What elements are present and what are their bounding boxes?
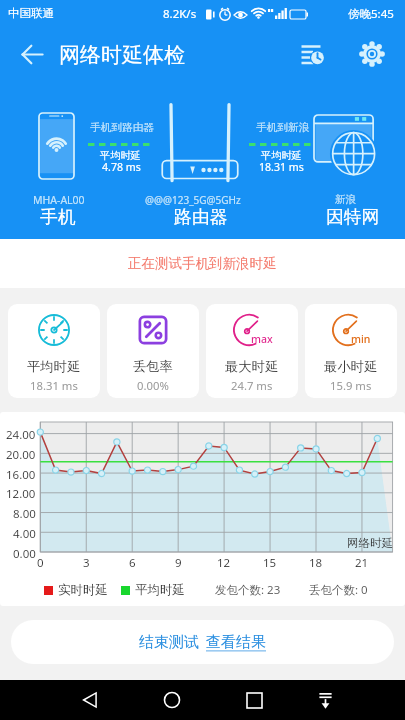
staticText: 12 xyxy=(217,555,231,571)
staticText: 网络时延 xyxy=(347,536,393,550)
staticText: 18.31 ms xyxy=(259,160,304,174)
button[interactable]: Settings xyxy=(349,29,395,79)
staticText: 15 xyxy=(263,555,277,571)
staticText: 新浪 xyxy=(335,193,356,206)
staticText: 12.00 xyxy=(6,486,36,502)
staticText: min xyxy=(351,332,371,346)
staticText: 20.00 xyxy=(6,447,36,463)
staticText: 16.00 xyxy=(6,467,36,483)
staticText: 正在测试手机到新浪时延 xyxy=(128,255,277,272)
staticText: 8.2K/s xyxy=(163,6,197,22)
staticText: @@@123_5G@5GHz xyxy=(145,193,241,207)
staticText: 平均时延 xyxy=(261,149,302,162)
button[interactable]: Home xyxy=(142,680,202,720)
staticText: 6 xyxy=(129,555,136,571)
staticText: 0.00 xyxy=(13,546,36,562)
button[interactable]: Back xyxy=(60,680,120,720)
staticText: max xyxy=(251,332,273,346)
staticText: 21 xyxy=(355,555,369,571)
staticText: 4.00 xyxy=(13,526,36,542)
staticText: 4.78 ms xyxy=(102,160,141,174)
staticText: 8.00 xyxy=(13,506,36,522)
button[interactable]: Recents xyxy=(224,680,284,720)
button[interactable]: 结束测试 xyxy=(11,620,394,664)
staticText: 手机到路由器 xyxy=(90,121,155,134)
staticText: 18 xyxy=(309,555,323,571)
staticText: 0.00% xyxy=(137,378,169,393)
staticText: 发包个数: 23 xyxy=(215,582,281,598)
button[interactable]: min xyxy=(305,304,397,398)
staticText: 路由器 xyxy=(174,206,228,228)
staticText: 实时时延 xyxy=(58,582,108,598)
staticText: 24.00 xyxy=(6,427,36,443)
staticText: 查看结果 xyxy=(206,633,266,652)
staticText: 中国联通 xyxy=(8,6,54,20)
staticText: 9 xyxy=(175,555,182,571)
staticText: 最小时延 xyxy=(324,358,378,375)
staticText: 24.7 ms xyxy=(231,378,273,393)
staticText: 傍晚5:45 xyxy=(348,6,394,22)
staticText: 丢包率 xyxy=(133,358,173,375)
button[interactable]: 平均时延 xyxy=(8,304,100,398)
staticText: 手机 xyxy=(40,206,76,228)
staticText: 18.31 ms xyxy=(30,378,78,393)
staticText: 3 xyxy=(83,555,90,571)
staticText: 手机到新浪 xyxy=(256,121,310,134)
staticText: 网络时延体检 xyxy=(59,42,185,68)
staticText: 最大时延 xyxy=(225,358,279,375)
button[interactable]: History xyxy=(289,29,335,79)
staticText: 15.9 ms xyxy=(330,378,372,393)
staticText: 结束测试 xyxy=(139,633,199,652)
staticText: 平均时延 xyxy=(27,358,81,375)
staticText: 平均时延 xyxy=(135,582,185,598)
staticText: MHA-AL00 xyxy=(33,193,85,207)
staticText: 平均时延 xyxy=(100,149,141,162)
button[interactable]: max xyxy=(206,304,298,398)
staticText: 0 xyxy=(37,555,44,571)
staticText: 因特网 xyxy=(326,206,380,228)
staticText: 丢包个数: 0 xyxy=(309,582,368,598)
button[interactable]: Back xyxy=(9,29,55,79)
button[interactable]: 丢包率 xyxy=(107,304,199,398)
button[interactable]: Hide navigation bar xyxy=(302,680,348,720)
